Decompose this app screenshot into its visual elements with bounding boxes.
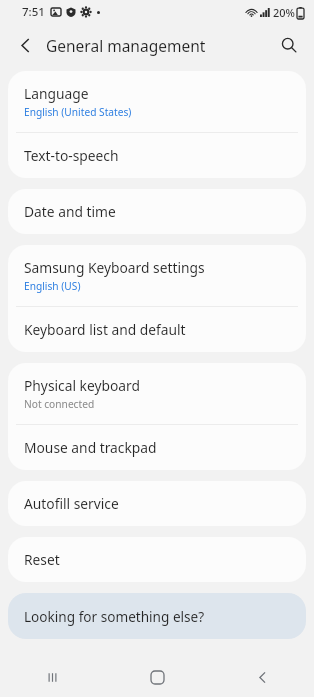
staticText: 7:51 <box>22 4 45 20</box>
button[interactable]: Keyboard list and default <box>8 307 306 352</box>
staticText: Physical keyboard <box>24 376 140 395</box>
staticText: Samsung Keyboard settings <box>24 258 205 277</box>
staticText: Date and time <box>24 202 116 221</box>
staticText: Not connected <box>24 397 95 411</box>
staticText: Keyboard list and default <box>24 320 186 339</box>
button[interactable]: Home <box>131 657 183 697</box>
button[interactable]: Reset <box>8 537 306 582</box>
staticText: English (US) <box>24 279 81 293</box>
button[interactable]: Navigate up <box>8 28 42 62</box>
staticText: General management <box>46 35 206 56</box>
button[interactable]: Physical keyboard <box>8 363 306 424</box>
button[interactable]: Date and time <box>8 189 306 234</box>
button[interactable]: Search <box>272 28 306 62</box>
staticText: 20% <box>273 5 295 20</box>
button[interactable]: Looking for something else? <box>8 593 306 639</box>
button[interactable]: Back <box>236 657 288 697</box>
button[interactable]: Language <box>8 71 306 132</box>
button[interactable]: Samsung Keyboard settings <box>8 245 306 306</box>
staticText: Looking for something else? <box>24 607 205 626</box>
staticText: Autofill service <box>24 494 119 513</box>
staticText: English (United States) <box>24 105 132 119</box>
button[interactable]: Mouse and trackpad <box>8 425 306 470</box>
staticText: Mouse and trackpad <box>24 438 157 457</box>
button[interactable]: Text-to-speech <box>8 133 306 178</box>
staticText: Text-to-speech <box>24 146 119 165</box>
button[interactable]: Autofill service <box>8 481 306 526</box>
staticText: Reset <box>24 550 60 569</box>
staticText: Language <box>24 84 89 103</box>
button[interactable]: Recent apps <box>26 657 78 697</box>
